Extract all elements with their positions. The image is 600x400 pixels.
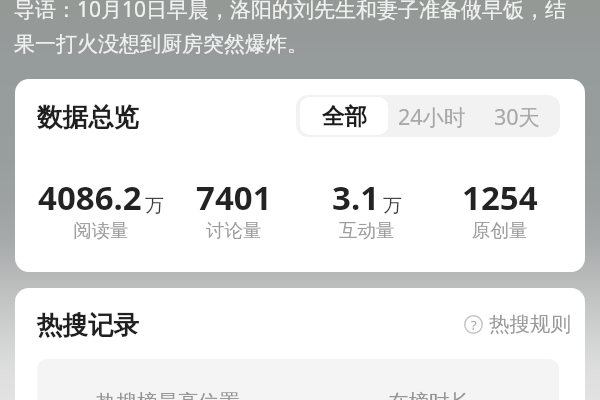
staticText: 讨论量 [206, 219, 262, 242]
button[interactable]: 24小时 [388, 95, 475, 137]
staticText: 热搜规则 [489, 311, 571, 337]
staticText: 1254 [462, 175, 538, 220]
staticText: 热搜记录 [37, 309, 139, 341]
button[interactable]: 7401 [167, 175, 300, 243]
button[interactable]: 30天 [475, 95, 560, 137]
staticText: 4086.2 [38, 175, 142, 220]
button[interactable]: 4086.2 [34, 175, 167, 243]
other: 热搜规则 [464, 315, 483, 334]
staticText: 热搜榜最高位置 [96, 389, 240, 400]
staticText: ? [471, 316, 477, 334]
staticText: 原创量 [472, 219, 528, 242]
staticText: 7401 [196, 175, 272, 220]
staticText: 互动量 [339, 219, 395, 242]
staticText: 万 [383, 194, 402, 218]
staticText: 24小时 [398, 102, 466, 131]
button[interactable]: 1254 [433, 175, 566, 243]
staticText: 阅读量 [73, 219, 129, 242]
staticText: 在榜时长 [388, 389, 470, 400]
button[interactable]: 3.1 [300, 175, 433, 243]
staticText: 3.1 [332, 175, 380, 220]
button[interactable]: 热搜规则 [464, 311, 571, 337]
staticText: 数据总览 [37, 101, 139, 133]
button[interactable]: 全部 [300, 97, 388, 135]
staticText: 万 [145, 194, 164, 218]
staticText: 30天 [494, 102, 541, 131]
staticText: 全部 [322, 102, 367, 130]
staticText: 导语：10月10日早晨，洛阳的刘先生和妻子准备做早饭，结果一打火没想到厨房突然爆… [14, 0, 584, 57]
